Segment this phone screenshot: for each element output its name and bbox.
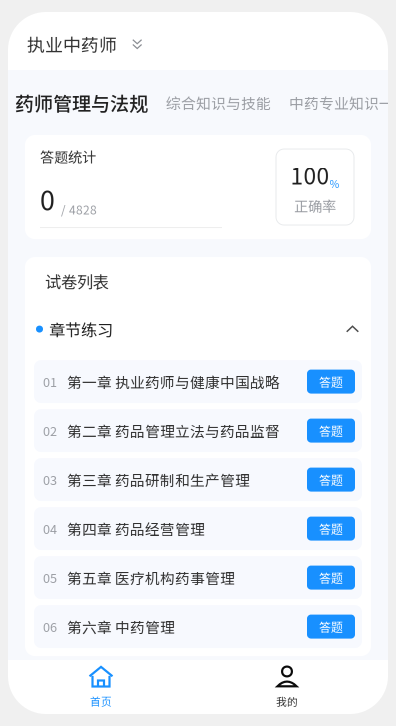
staticText: 我的 [276,693,298,709]
staticText: / 4828 [61,201,97,218]
staticText: 答题 [319,618,343,635]
button[interactable]: 首页 [8,660,194,714]
staticText: 03 [43,470,57,489]
staticText: 01 [43,372,57,391]
staticText: 05 [43,568,57,587]
button[interactable]: 06 [34,605,362,648]
staticText: 06 [43,617,57,636]
staticText: 第五章 医疗机构药事管理 [67,567,235,588]
button[interactable]: 05 [34,556,362,599]
button[interactable]: 02 [34,409,362,452]
staticText: 药师管理与法规 [15,89,148,116]
staticText: 章节练习 [49,317,113,341]
staticText: 第四章 药品经营管理 [67,518,205,539]
button[interactable]: 01 [34,360,362,403]
button[interactable]: 药师管理与法规 [15,89,148,116]
staticText: 04 [43,519,57,538]
button[interactable]: 我的 [194,660,380,714]
staticText: 答题统计 [40,146,96,166]
staticText: 答题 [319,422,343,439]
staticText: 100 [290,158,329,191]
button[interactable]: 中药专业知识一 [289,92,388,113]
staticText: 答题 [319,373,343,390]
staticText: % [329,176,339,191]
button[interactable]: 04 [34,507,362,550]
staticText: 第一章 执业药师与健康中国战略 [67,371,280,392]
staticText: 第六章 中药管理 [67,616,175,637]
button[interactable]: 综合知识与技能 [166,92,271,113]
staticText: 02 [43,421,57,440]
staticText: 答题 [319,471,343,488]
staticText: 执业中药师 [27,31,117,57]
staticText: 答题 [319,520,343,537]
button[interactable]: 章节练习 [25,305,371,353]
staticText: 第三章 药品研制和生产管理 [67,469,250,490]
staticText: 0 [40,179,55,218]
staticText: 正确率 [294,195,336,216]
staticText: 试卷列表 [45,269,109,293]
staticText: 答题 [319,569,343,586]
button[interactable]: 03 [34,458,362,501]
staticText: 第二章 药品管理立法与药品监督 [67,420,280,441]
staticText: 综合知识与技能 [166,92,271,113]
button[interactable]: 执业中药师 [8,12,388,70]
staticText: 中药专业知识一 [289,92,394,113]
staticText: 首页 [90,693,112,709]
